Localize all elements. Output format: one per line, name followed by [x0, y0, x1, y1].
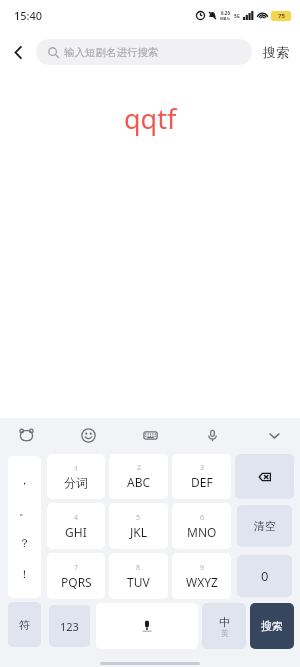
staticText: JKL	[130, 524, 147, 540]
button[interactable]: 中	[202, 603, 246, 649]
staticText: 2	[137, 463, 142, 473]
staticText: 8	[136, 563, 141, 573]
staticText: 英	[221, 629, 229, 638]
button[interactable]: Voice input	[198, 421, 226, 449]
staticText: 7	[74, 563, 79, 573]
staticText: 5G	[234, 13, 240, 19]
staticText: ，	[19, 473, 30, 487]
staticText: 1	[74, 464, 79, 474]
staticText: 0	[261, 567, 269, 585]
button[interactable]: 清空	[237, 505, 292, 547]
staticText: ABC	[127, 474, 151, 490]
staticText: 6	[200, 513, 205, 523]
staticText: 清空	[254, 519, 276, 533]
button[interactable]: Input method	[12, 421, 40, 449]
staticText: PQRS	[61, 574, 92, 590]
staticText: 6.20	[221, 10, 230, 16]
staticText: WXYZ	[186, 574, 218, 590]
staticText: 输入短剧名进行搜索	[64, 46, 159, 59]
staticText: 分词	[64, 475, 88, 490]
button[interactable]: 输入短剧名进行搜索	[36, 39, 252, 65]
button[interactable]: 123	[49, 605, 90, 647]
staticText: 符	[19, 618, 30, 632]
button[interactable]: 3	[172, 454, 231, 499]
staticText: DEF	[191, 474, 213, 490]
button[interactable]: 搜索	[250, 603, 294, 649]
button[interactable]: 符	[8, 602, 41, 647]
button[interactable]: Emoji	[74, 421, 102, 449]
staticText: ！	[19, 567, 30, 581]
button[interactable]: 搜索	[252, 30, 300, 74]
button[interactable]: Backspace	[235, 454, 294, 499]
button[interactable]: 1	[47, 454, 105, 499]
staticText: 9	[200, 563, 205, 573]
staticText: 4	[74, 513, 79, 523]
button[interactable]: 5	[109, 503, 168, 549]
staticText: ？	[19, 536, 30, 550]
staticText: 中	[219, 615, 230, 629]
staticText: 搜索	[263, 44, 289, 60]
staticText: GHI	[65, 524, 87, 540]
button[interactable]: Keyboard layout	[136, 421, 164, 449]
button[interactable]: ，	[8, 456, 41, 598]
staticText: 75	[278, 12, 285, 20]
staticText: MB/s	[220, 16, 231, 21]
button[interactable]: 7	[47, 553, 105, 599]
button[interactable]: 9	[172, 553, 231, 599]
button[interactable]: 0	[237, 555, 292, 597]
button[interactable]: 8	[109, 553, 168, 599]
staticText: MNO	[187, 524, 217, 540]
button[interactable]: 4	[47, 503, 105, 549]
button[interactable]: Voice input	[96, 603, 198, 649]
button[interactable]: Hide keyboard	[260, 421, 288, 449]
staticText: qqtf	[124, 100, 177, 137]
staticText: 15:40	[14, 8, 43, 23]
button[interactable]: 6	[172, 503, 231, 549]
staticText: TUV	[127, 574, 150, 590]
staticText: 搜索	[261, 619, 283, 633]
button[interactable]: 2	[109, 454, 168, 499]
button[interactable]: Back	[0, 34, 36, 70]
staticText: 3	[200, 463, 205, 473]
staticText: 5	[136, 513, 141, 523]
staticText: 123	[60, 619, 79, 634]
staticText: 。	[19, 504, 30, 518]
